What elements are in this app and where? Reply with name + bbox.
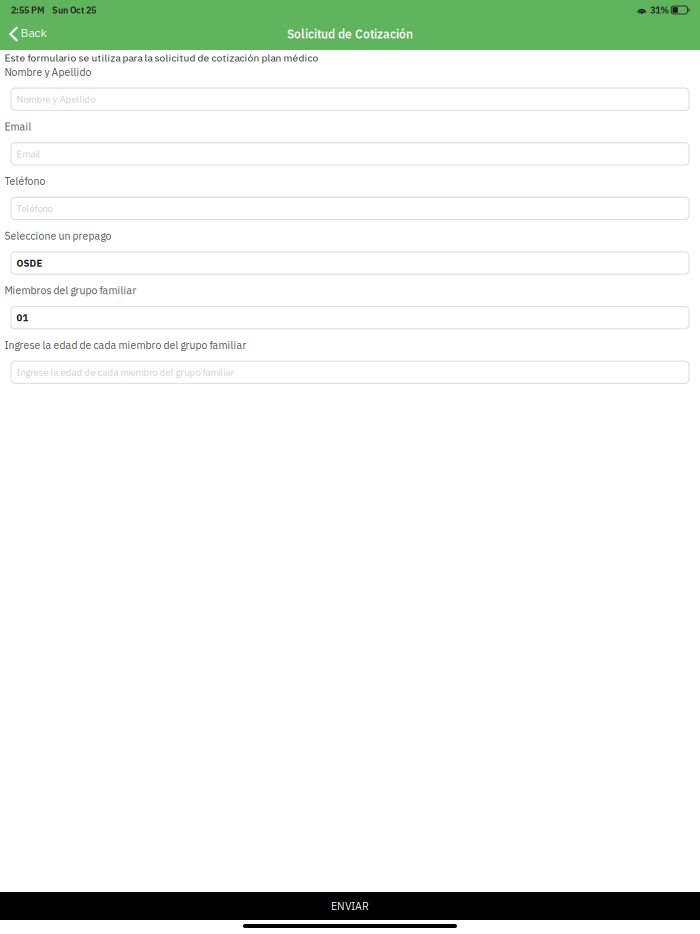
staticText: Sun Oct 25: [52, 4, 96, 16]
button[interactable]: OSDE: [0, 252, 700, 274]
button[interactable]: Nombre y Apellido: [0, 88, 700, 110]
staticText: Ingrese la edad de cada miembro del grup…: [4, 338, 246, 352]
button[interactable]: Teléfono: [0, 197, 700, 220]
staticText: Este formulario se utiliza para la solic…: [4, 51, 318, 64]
button[interactable]: Email: [0, 143, 700, 165]
staticText: Back: [20, 25, 46, 40]
staticText: Email: [4, 120, 31, 133]
staticText: 31%: [650, 4, 669, 16]
staticText: Teléfono: [4, 174, 45, 188]
button[interactable]: Ingrese la edad de cada miembro del grup…: [0, 361, 700, 383]
staticText: Nombre y Apellido: [16, 93, 95, 105]
button[interactable]: Back: [0, 23, 52, 45]
staticText: Nombre y Apellido: [4, 65, 91, 79]
staticText: ENVIAR: [331, 899, 369, 913]
staticText: 01: [16, 311, 28, 324]
staticText: Email: [16, 148, 40, 160]
staticText: Ingrese la edad de cada miembro del grup…: [16, 366, 234, 378]
staticText: Miembros del grupo familiar: [4, 284, 136, 297]
staticText: Teléfono: [16, 202, 52, 215]
staticText: Solicitud de Cotización: [287, 26, 413, 42]
button[interactable]: 01: [0, 306, 700, 329]
staticText: Seleccione un prepago: [4, 229, 111, 242]
button[interactable]: ENVIAR: [0, 892, 700, 920]
staticText: 2:55 PM: [11, 4, 44, 16]
staticText: OSDE: [16, 257, 42, 269]
